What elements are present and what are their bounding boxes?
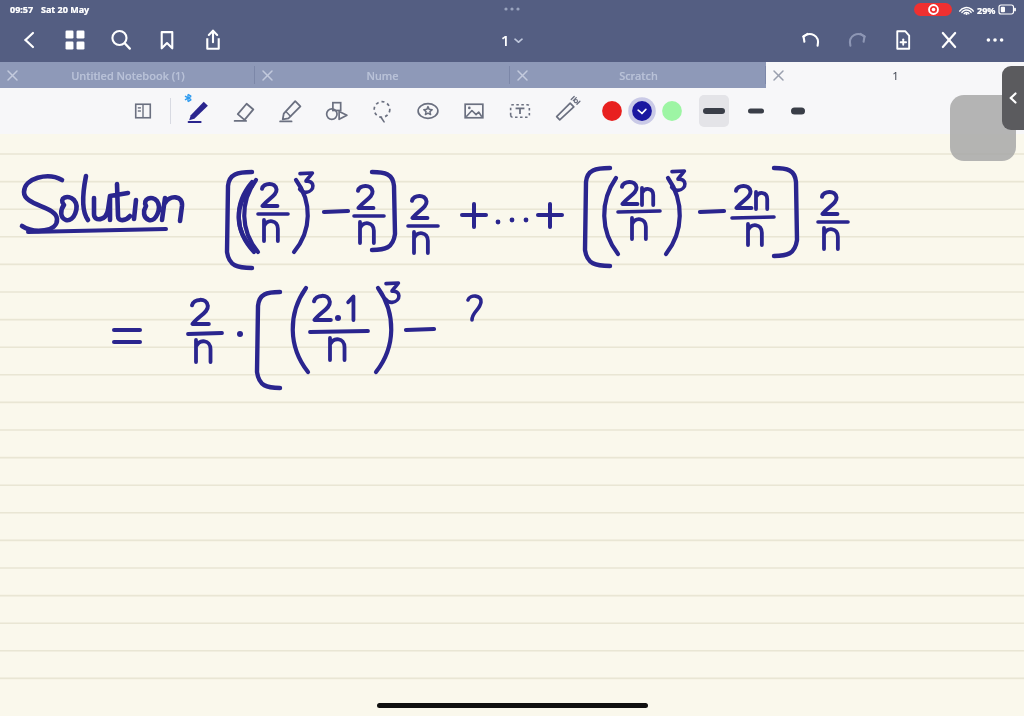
button[interactable]: Magic <box>543 91 589 131</box>
button[interactable]: Back <box>6 18 52 62</box>
button[interactable]: Image <box>451 91 497 131</box>
button[interactable]: Shapes <box>313 91 359 131</box>
staticText: Scratch <box>619 68 658 83</box>
button[interactable]: Color <box>657 96 687 126</box>
staticText: Sat 20 May <box>41 3 90 15</box>
button[interactable]: Stroke width <box>741 95 771 127</box>
button[interactable]: Undo <box>788 18 834 62</box>
button[interactable]: Expand panel <box>1002 66 1024 130</box>
button[interactable]: Color <box>627 96 657 126</box>
button[interactable]: New page <box>880 18 926 62</box>
button[interactable]: Stroke width <box>699 95 729 127</box>
button[interactable]: Text <box>497 91 543 131</box>
button[interactable]: Page mode <box>120 91 166 131</box>
button[interactable]: Scratch <box>510 62 766 88</box>
button[interactable]: More <box>972 18 1018 62</box>
button[interactable]: 1 <box>766 62 1024 88</box>
staticText: 1 <box>892 68 899 83</box>
staticText: 1 <box>501 30 510 50</box>
staticText: 29% <box>977 4 996 16</box>
button[interactable]: Pen <box>175 91 221 131</box>
button[interactable]: 1 <box>501 30 523 50</box>
button[interactable]: Nume <box>255 62 510 88</box>
button[interactable]: Search <box>98 18 144 62</box>
button[interactable]: Eraser <box>221 91 267 131</box>
button[interactable]: Untitled Notebook (1) <box>0 62 255 88</box>
button[interactable]: Color <box>597 96 627 126</box>
button[interactable]: Share <box>190 18 236 62</box>
button[interactable]: Bookmark <box>144 18 190 62</box>
button[interactable]: Pages <box>52 18 98 62</box>
button[interactable]: Sticker <box>405 91 451 131</box>
button[interactable]: Lasso <box>359 91 405 131</box>
staticText: 09:57 <box>10 3 34 15</box>
staticText: Nume <box>366 68 399 83</box>
button[interactable]: Highlighter <box>267 91 313 131</box>
button[interactable]: Floating tool <box>950 95 1016 161</box>
button[interactable]: Close <box>926 18 972 62</box>
staticText: Untitled Notebook (1) <box>71 68 185 83</box>
button[interactable]: Redo <box>834 18 880 62</box>
button[interactable]: Stroke width <box>783 95 813 127</box>
